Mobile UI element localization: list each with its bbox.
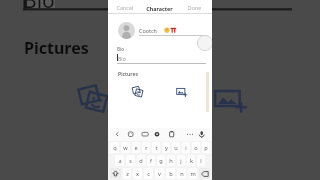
button[interactable]: n — [177, 168, 186, 179]
staticText: e — [134, 144, 138, 152]
staticText: h — [169, 157, 173, 165]
button[interactable]: Cancel — [108, 0, 142, 13]
button[interactable]: d — [137, 155, 145, 166]
button[interactable]: c — [144, 168, 153, 179]
button[interactable]: m — [188, 168, 197, 179]
button[interactable]: l — [197, 155, 205, 166]
staticText: n — [180, 170, 184, 178]
staticText: i — [185, 144, 187, 152]
staticText: d — [139, 157, 143, 165]
staticText: Pictures — [118, 70, 138, 77]
button[interactable]: v — [155, 168, 164, 179]
staticText: m — [190, 170, 196, 178]
staticText: Bio — [23, 0, 55, 15]
button[interactable]: z — [123, 168, 131, 179]
button[interactable]: k — [187, 155, 195, 166]
button[interactable]: q — [110, 142, 119, 153]
button[interactable]: w — [121, 142, 130, 153]
staticText: r — [145, 144, 148, 152]
button[interactable]: g — [157, 155, 165, 166]
button[interactable]: Take photo — [130, 84, 146, 100]
staticText: p — [204, 144, 208, 152]
button[interactable]: j — [177, 155, 185, 166]
staticText: y — [165, 144, 168, 152]
staticText: x — [136, 170, 139, 178]
staticText: z — [126, 170, 129, 178]
staticText: Bio — [118, 55, 126, 62]
staticText: q — [113, 144, 117, 152]
button[interactable]: Shift — [110, 168, 121, 179]
staticText: v — [158, 170, 161, 178]
staticText: c — [147, 170, 150, 178]
button[interactable]: r — [142, 142, 150, 153]
staticText: s — [129, 157, 132, 165]
button[interactable]: t — [152, 142, 160, 153]
staticText: u — [174, 144, 178, 152]
staticText: a — [118, 157, 122, 165]
button[interactable]: Add photo — [174, 84, 190, 100]
staticText: k — [190, 157, 193, 165]
staticText: l — [200, 157, 202, 165]
button[interactable]: x — [133, 168, 142, 179]
button[interactable]: Backspace — [199, 168, 210, 179]
staticText: Character — [142, 5, 177, 12]
staticText: o — [194, 144, 198, 152]
button[interactable]: Change avatar — [118, 22, 135, 39]
button[interactable]: y — [162, 142, 170, 153]
staticText: j — [180, 157, 182, 165]
staticText: Bio — [117, 46, 124, 52]
button[interactable]: Bio — [117, 54, 206, 64]
staticText: t — [155, 144, 158, 152]
staticText: b — [169, 170, 173, 178]
button[interactable]: b — [166, 168, 175, 179]
staticText: g — [159, 157, 163, 165]
button[interactable]: i — [182, 142, 190, 153]
button[interactable]: f — [147, 155, 155, 166]
button[interactable]: p — [202, 142, 210, 153]
staticText: Pictures — [24, 37, 89, 59]
staticText: Cootch — [139, 27, 157, 34]
button[interactable]: h — [167, 155, 175, 166]
button[interactable]: e — [132, 142, 140, 153]
button[interactable]: Cootch — [139, 24, 207, 36]
button[interactable]: Done — [177, 0, 212, 13]
staticText: w — [123, 144, 128, 152]
staticText: f — [150, 157, 152, 165]
button[interactable]: u — [172, 142, 180, 153]
button[interactable]: a — [115, 155, 124, 166]
button[interactable]: s — [126, 155, 135, 166]
button[interactable]: o — [192, 142, 200, 153]
